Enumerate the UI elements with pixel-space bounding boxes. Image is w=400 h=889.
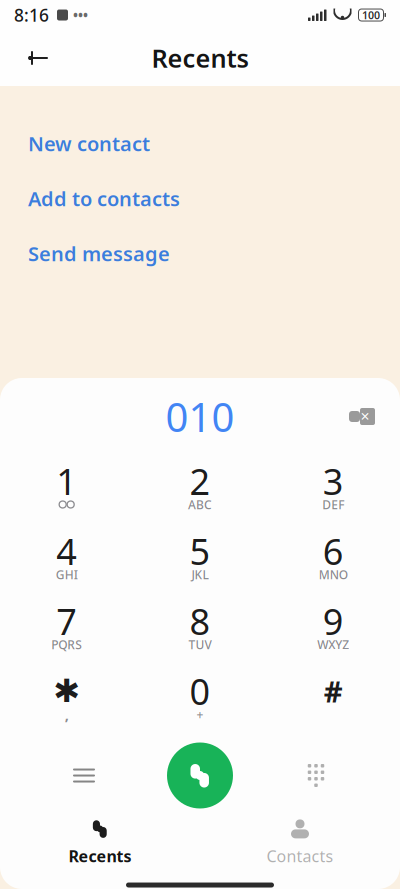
button[interactable]: 3 xyxy=(267,452,400,522)
button[interactable]: 0 xyxy=(133,662,267,732)
button[interactable]: Keypad xyxy=(280,739,352,811)
button[interactable]: 2 xyxy=(133,452,267,522)
staticText: PQRS xyxy=(51,636,82,652)
staticText: DEF xyxy=(322,496,344,512)
staticText: 100 xyxy=(362,8,380,22)
button[interactable]: 4 xyxy=(0,522,133,592)
staticText: WXYZ xyxy=(317,636,349,652)
button[interactable]: ✱ xyxy=(0,662,133,732)
button[interactable]: 8 xyxy=(133,592,267,662)
button[interactable]: Send message xyxy=(28,226,170,281)
button[interactable]: Recents xyxy=(0,815,200,869)
staticText: ✱ xyxy=(53,673,80,709)
staticText: ABC xyxy=(188,496,212,512)
staticText: Recents xyxy=(68,845,131,867)
staticText: Send message xyxy=(28,240,170,267)
staticText: JKL xyxy=(191,566,208,582)
staticText: 6 xyxy=(323,527,344,575)
staticText: 8:16 xyxy=(14,3,49,26)
button[interactable]: New contact xyxy=(28,116,150,171)
staticText: ••• xyxy=(73,6,88,24)
staticText: 4 xyxy=(56,527,77,575)
button[interactable]: 9 xyxy=(267,592,400,662)
staticText: Contacts xyxy=(266,845,333,867)
button[interactable]: 1 xyxy=(0,452,133,522)
staticText: MNO xyxy=(319,566,348,582)
staticText: , xyxy=(65,705,69,724)
button[interactable]: More options xyxy=(48,739,120,811)
staticText: 9 xyxy=(323,597,344,645)
staticText: 5 xyxy=(189,527,210,575)
button[interactable]: Contacts xyxy=(200,815,400,869)
staticText: Add to contacts xyxy=(28,185,180,212)
staticText: TUV xyxy=(188,636,211,652)
staticText: 2 xyxy=(189,457,210,505)
staticText: 1 xyxy=(56,457,77,505)
button[interactable]: 5 xyxy=(133,522,267,592)
staticText: 8 xyxy=(189,597,210,645)
button[interactable]: Delete xyxy=(340,396,384,436)
staticText: 7 xyxy=(56,597,77,645)
button[interactable]: 7 xyxy=(0,592,133,662)
button[interactable]: 6 xyxy=(267,522,400,592)
button[interactable]: Add to contacts xyxy=(28,171,180,226)
staticText: Recents xyxy=(151,41,248,75)
staticText: New contact xyxy=(28,130,150,157)
staticText: GHI xyxy=(56,566,78,582)
button[interactable]: # xyxy=(267,662,400,732)
button[interactable]: Call xyxy=(164,739,236,811)
staticText: 0 xyxy=(189,667,210,715)
staticText: 3 xyxy=(323,457,344,505)
staticText: + xyxy=(196,706,203,722)
staticText: ✕ xyxy=(360,410,370,423)
button[interactable]: Back xyxy=(15,35,61,81)
staticText: # xyxy=(324,671,343,710)
staticText: 010 xyxy=(165,390,234,443)
